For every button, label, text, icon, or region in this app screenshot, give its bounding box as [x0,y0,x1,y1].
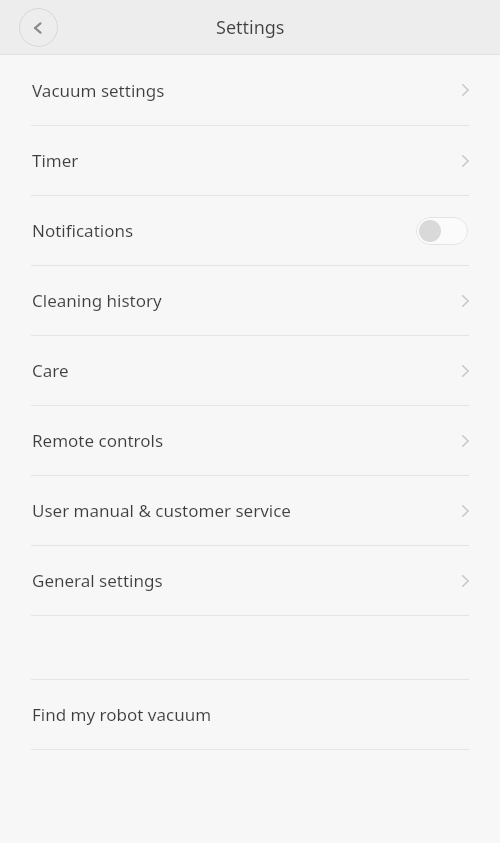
button[interactable]: Notifications [0,196,500,265]
staticText: Timer [32,149,79,172]
staticText: User manual & customer service [32,499,291,522]
button[interactable]: Back [19,8,58,47]
button[interactable]: Care [0,336,500,405]
staticText: Cleaning history [32,289,162,312]
button[interactable]: Cleaning history [0,266,500,335]
staticText: Notifications [32,219,134,242]
staticText: Settings [216,15,285,40]
staticText: Vacuum settings [32,79,165,102]
button[interactable]: Timer [0,126,500,195]
button[interactable]: Find my robot vacuum [0,680,500,749]
button[interactable]: General settings [0,546,500,615]
staticText: General settings [32,569,163,592]
staticText: Find my robot vacuum [32,703,212,726]
button[interactable]: User manual & customer service [0,476,500,545]
button[interactable]: Remote controls [0,406,500,475]
staticText: Remote controls [32,429,164,452]
staticText: Care [32,359,69,382]
button[interactable]: Vacuum settings [0,55,500,125]
other: Notifications toggle, off [416,217,468,245]
